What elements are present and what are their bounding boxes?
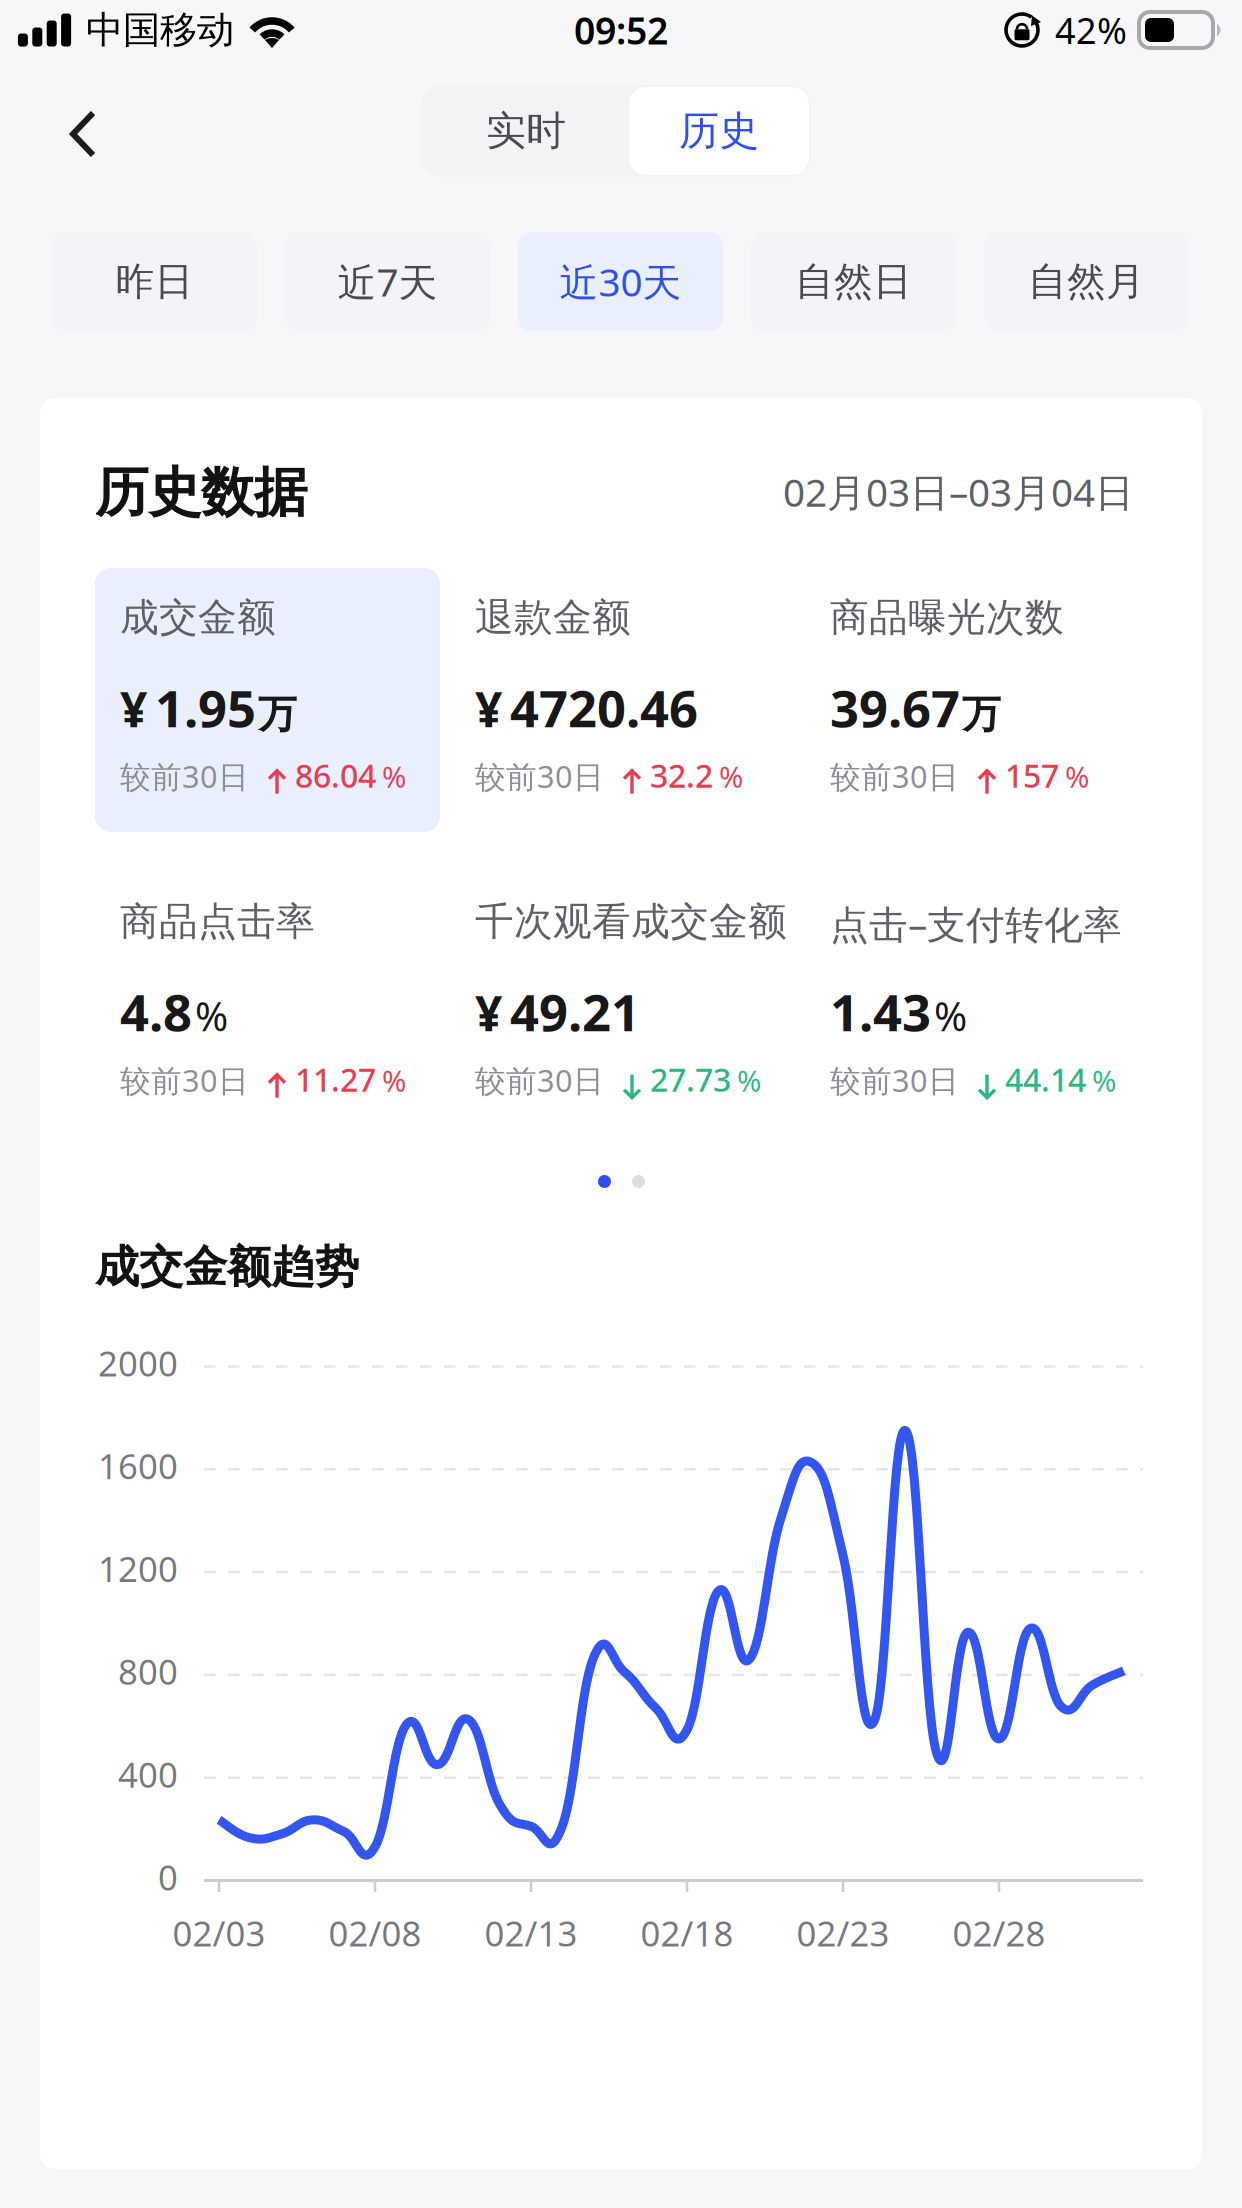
staticText: 历史	[679, 106, 759, 155]
staticText: 较前30日	[475, 756, 604, 796]
staticText: ¥	[475, 677, 502, 740]
staticText: 157	[1005, 754, 1059, 796]
staticText: 千次观看成交金额	[475, 898, 787, 945]
staticText: 49.21	[510, 978, 640, 1045]
button[interactable]: 千次观看成交金额	[450, 872, 795, 1136]
staticText: 02月03日–03月04日	[783, 466, 1134, 517]
button[interactable]: 自然日	[751, 232, 956, 331]
staticText: 成交金额	[120, 594, 276, 641]
staticText: %	[195, 989, 228, 1042]
staticText: 02/28	[952, 1910, 1045, 1956]
staticText: 0	[158, 1854, 178, 1900]
staticText: %	[934, 989, 967, 1042]
staticText: 4720.46	[510, 674, 698, 741]
staticText: 1.95	[155, 674, 256, 741]
staticText: 400	[118, 1751, 178, 1797]
button[interactable]: 近30天	[518, 232, 723, 331]
staticText: 退款金额	[475, 594, 631, 641]
button[interactable]: 成交金额	[95, 568, 440, 832]
staticText: %	[1065, 757, 1089, 796]
staticText: 昨日	[115, 258, 193, 305]
staticText: 86.04	[295, 754, 376, 796]
button[interactable]: 近7天	[285, 232, 490, 331]
staticText: 近30天	[559, 256, 681, 307]
staticText: 自然月	[1028, 258, 1145, 305]
staticText: 近7天	[337, 256, 437, 307]
button[interactable]: Back	[38, 86, 128, 182]
staticText: %	[737, 1061, 761, 1100]
button[interactable]: 点击–支付转化率	[805, 872, 1150, 1136]
staticText: 02/18	[640, 1910, 733, 1956]
staticText: 实时	[486, 106, 566, 155]
staticText: 点击–支付转化率	[830, 898, 1122, 949]
staticText: 较前30日	[475, 1060, 604, 1100]
button[interactable]: 实时	[423, 85, 629, 177]
staticText: 成交金额趋势	[95, 1240, 359, 1294]
staticText: %	[382, 757, 406, 796]
staticText: 较前30日	[120, 756, 249, 796]
button[interactable]: 退款金额	[450, 568, 795, 832]
staticText: 较前30日	[120, 1060, 249, 1100]
staticText: 2000	[98, 1340, 178, 1386]
staticText: 1600	[98, 1443, 178, 1489]
staticText: 44.14	[1005, 1058, 1086, 1100]
staticText: ¥	[475, 981, 502, 1044]
staticText: 4.8	[120, 978, 192, 1045]
staticText: 02/13	[484, 1910, 577, 1956]
staticText: 02/23	[796, 1910, 889, 1956]
staticText: 商品曝光次数	[830, 594, 1064, 641]
staticText: 02/03	[172, 1910, 265, 1956]
staticText: 历史数据	[95, 460, 307, 525]
staticText: 32.2	[650, 754, 713, 796]
staticText: 11.27	[295, 1058, 376, 1100]
staticText: 万	[962, 691, 1001, 738]
button[interactable]: 商品点击率	[95, 872, 440, 1136]
staticText: 1.43	[830, 978, 931, 1045]
staticText: 800	[118, 1648, 178, 1694]
staticText: 中国移动	[86, 7, 234, 53]
staticText: 02/08	[328, 1910, 421, 1956]
staticText: 27.73	[650, 1058, 731, 1100]
staticText: %	[719, 757, 743, 796]
staticText: 万	[258, 691, 297, 738]
staticText: 39.67	[830, 674, 960, 741]
staticText: 42%	[1055, 6, 1127, 54]
button[interactable]: 昨日	[52, 232, 257, 331]
staticText: 商品点击率	[120, 898, 315, 945]
staticText: 自然日	[795, 258, 912, 305]
staticText: %	[1092, 1061, 1116, 1100]
button[interactable]: 自然月	[984, 232, 1189, 331]
staticText: %	[382, 1061, 406, 1100]
staticText: 较前30日	[830, 1060, 959, 1100]
staticText: ¥	[120, 677, 147, 740]
staticText: 1200	[98, 1546, 178, 1592]
button[interactable]: 历史	[629, 87, 809, 175]
staticText: 09:52	[574, 5, 668, 55]
button[interactable]: 商品曝光次数	[805, 568, 1150, 832]
staticText: 较前30日	[830, 756, 959, 796]
